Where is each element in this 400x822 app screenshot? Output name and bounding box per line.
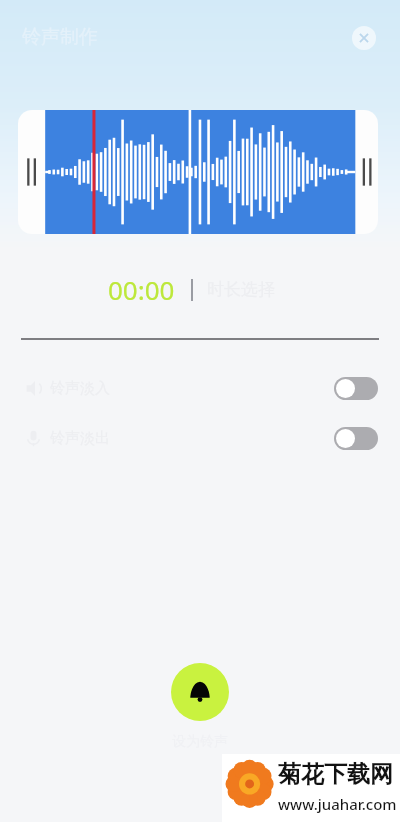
button[interactable]: 设为铃声 [171,663,229,721]
button[interactable]: 关闭 [352,26,376,50]
staticText: www.juahar.com [278,794,397,814]
staticText: 00:00 [108,272,175,307]
button[interactable]: 铃声淡入 [0,372,400,404]
button[interactable] [18,110,378,234]
button[interactable]: 铃声淡出 [334,427,378,450]
staticText: 铃声制作 [22,25,98,49]
button[interactable]: 铃声淡入 [334,377,378,400]
staticText: 菊花下载网 [278,760,393,789]
button[interactable]: 铃声淡出 [0,422,400,454]
staticText: 时长选择 [207,279,275,300]
